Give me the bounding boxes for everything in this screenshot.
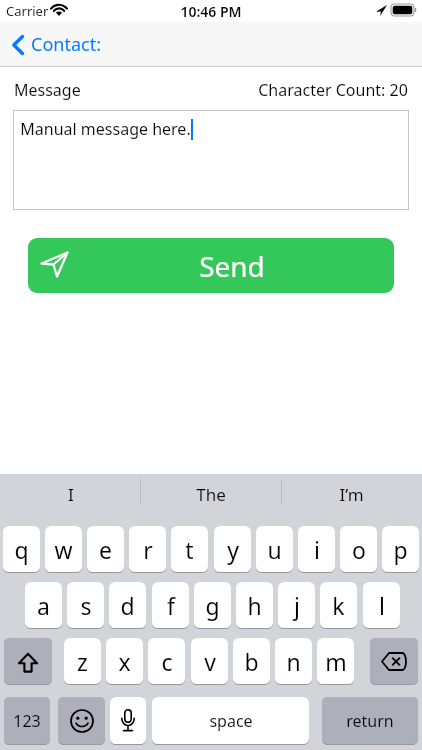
staticText: Character Count: 20	[258, 79, 408, 101]
staticText: Carrier	[6, 2, 49, 20]
button[interactable]	[110, 697, 146, 745]
button[interactable]: l	[363, 582, 400, 629]
staticText: 123	[13, 710, 41, 732]
button[interactable]: space	[152, 697, 309, 745]
button[interactable]: p	[382, 526, 419, 573]
button[interactable]: e	[87, 526, 124, 573]
staticText: c	[161, 646, 173, 677]
staticText: I	[68, 483, 74, 506]
staticText: Contact:	[31, 32, 101, 57]
staticText: b	[244, 646, 259, 677]
button[interactable]: Send	[28, 238, 394, 293]
button[interactable]: The	[141, 474, 281, 515]
staticText: l	[379, 590, 385, 621]
staticText: Message	[14, 79, 81, 101]
button[interactable]: w	[45, 526, 82, 573]
staticText: return	[346, 710, 394, 732]
button[interactable]: m	[317, 638, 354, 685]
button[interactable]: i	[298, 526, 335, 573]
button[interactable]: j	[278, 582, 315, 629]
button[interactable]	[4, 638, 52, 685]
staticText: o	[352, 534, 366, 565]
staticText: r	[143, 534, 153, 565]
button[interactable]: 123	[4, 697, 50, 745]
staticText: n	[286, 646, 301, 677]
staticText: h	[247, 590, 262, 621]
button[interactable]: Contact:	[12, 22, 101, 67]
staticText: y	[227, 534, 239, 565]
button[interactable]: g	[194, 582, 231, 629]
button[interactable]: k	[320, 582, 357, 629]
button[interactable]: Manual message here.	[13, 110, 409, 210]
staticText: u	[267, 534, 282, 565]
button[interactable]: q	[3, 526, 40, 573]
staticText: k	[332, 590, 345, 621]
button[interactable]: b	[233, 638, 270, 685]
staticText: a	[37, 590, 50, 621]
button[interactable]	[370, 638, 418, 685]
staticText: Manual message here.	[20, 118, 191, 140]
staticText: p	[393, 534, 408, 565]
staticText: 10:46 PM	[180, 2, 242, 21]
button[interactable]: r	[129, 526, 166, 573]
button[interactable]: t	[171, 526, 208, 573]
button[interactable]: z	[64, 638, 101, 685]
button[interactable]: u	[256, 526, 293, 573]
button[interactable]: x	[106, 638, 143, 685]
staticText: z	[77, 646, 88, 677]
staticText: i	[314, 534, 320, 565]
button[interactable]: h	[236, 582, 273, 629]
staticText: I’m	[339, 483, 364, 506]
button[interactable]: s	[67, 582, 104, 629]
button[interactable]	[58, 697, 105, 745]
button[interactable]: o	[340, 526, 377, 573]
button[interactable]: return	[322, 697, 418, 745]
button[interactable]: n	[275, 638, 312, 685]
staticText: s	[80, 590, 92, 621]
staticText: f	[167, 590, 175, 621]
staticText: space	[209, 710, 253, 732]
button[interactable]: I	[0, 474, 141, 515]
staticText: x	[118, 646, 131, 677]
staticText: w	[54, 534, 73, 565]
staticText: t	[185, 534, 194, 565]
button[interactable]: I’m	[281, 474, 422, 515]
staticText: j	[294, 590, 300, 621]
staticText: d	[120, 590, 135, 621]
staticText: g	[205, 590, 220, 621]
staticText: The	[196, 483, 226, 506]
button[interactable]: v	[191, 638, 228, 685]
button[interactable]: c	[148, 638, 185, 685]
staticText: Send	[199, 247, 265, 285]
staticText: q	[14, 534, 29, 565]
staticText: m	[325, 646, 347, 677]
button[interactable]: y	[214, 526, 251, 573]
staticText: v	[204, 646, 216, 677]
button[interactable]: f	[152, 582, 189, 629]
staticText: e	[99, 534, 112, 565]
button[interactable]: a	[25, 582, 62, 629]
button[interactable]: d	[109, 582, 146, 629]
